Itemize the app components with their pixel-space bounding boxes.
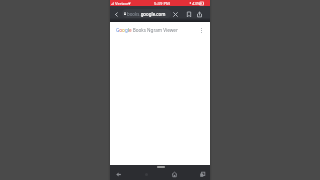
staticText: books.google.com <box>127 11 166 17</box>
staticText: Verizon <box>115 1 130 7</box>
staticText: Google Books Ngram Viewer <box>116 27 178 33</box>
staticText: 5:39 PM <box>154 1 170 7</box>
button[interactable]: Address bar <box>122 9 171 18</box>
button[interactable]: More options <box>197 26 205 34</box>
button[interactable]: Back <box>112 168 124 180</box>
button[interactable]: Share <box>194 9 205 20</box>
button[interactable]: Back <box>111 9 122 20</box>
button[interactable]: Recent apps <box>196 168 208 180</box>
button[interactable]: Stop loading <box>170 9 181 20</box>
button[interactable]: Bookmark <box>183 9 194 20</box>
button[interactable]: Home <box>168 168 180 180</box>
staticText: 43% <box>192 1 201 7</box>
